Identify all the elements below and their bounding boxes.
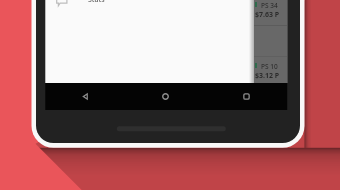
button[interactable]: Recent apps [206,83,287,110]
button[interactable]: Stats [45,0,254,7]
staticText: $3.12 P [255,71,280,81]
staticText: PS 10 [261,62,278,71]
button[interactable]: Back [45,83,125,110]
button[interactable]: PS 34 [254,0,287,27]
staticText: PS 34 [261,1,278,10]
button[interactable]: PS 34 [254,0,287,83]
staticText: Stats [88,0,105,5]
staticText: $7.63 P [255,10,280,20]
button[interactable]: PS 10 [254,57,287,88]
button[interactable]: Home [125,83,206,110]
